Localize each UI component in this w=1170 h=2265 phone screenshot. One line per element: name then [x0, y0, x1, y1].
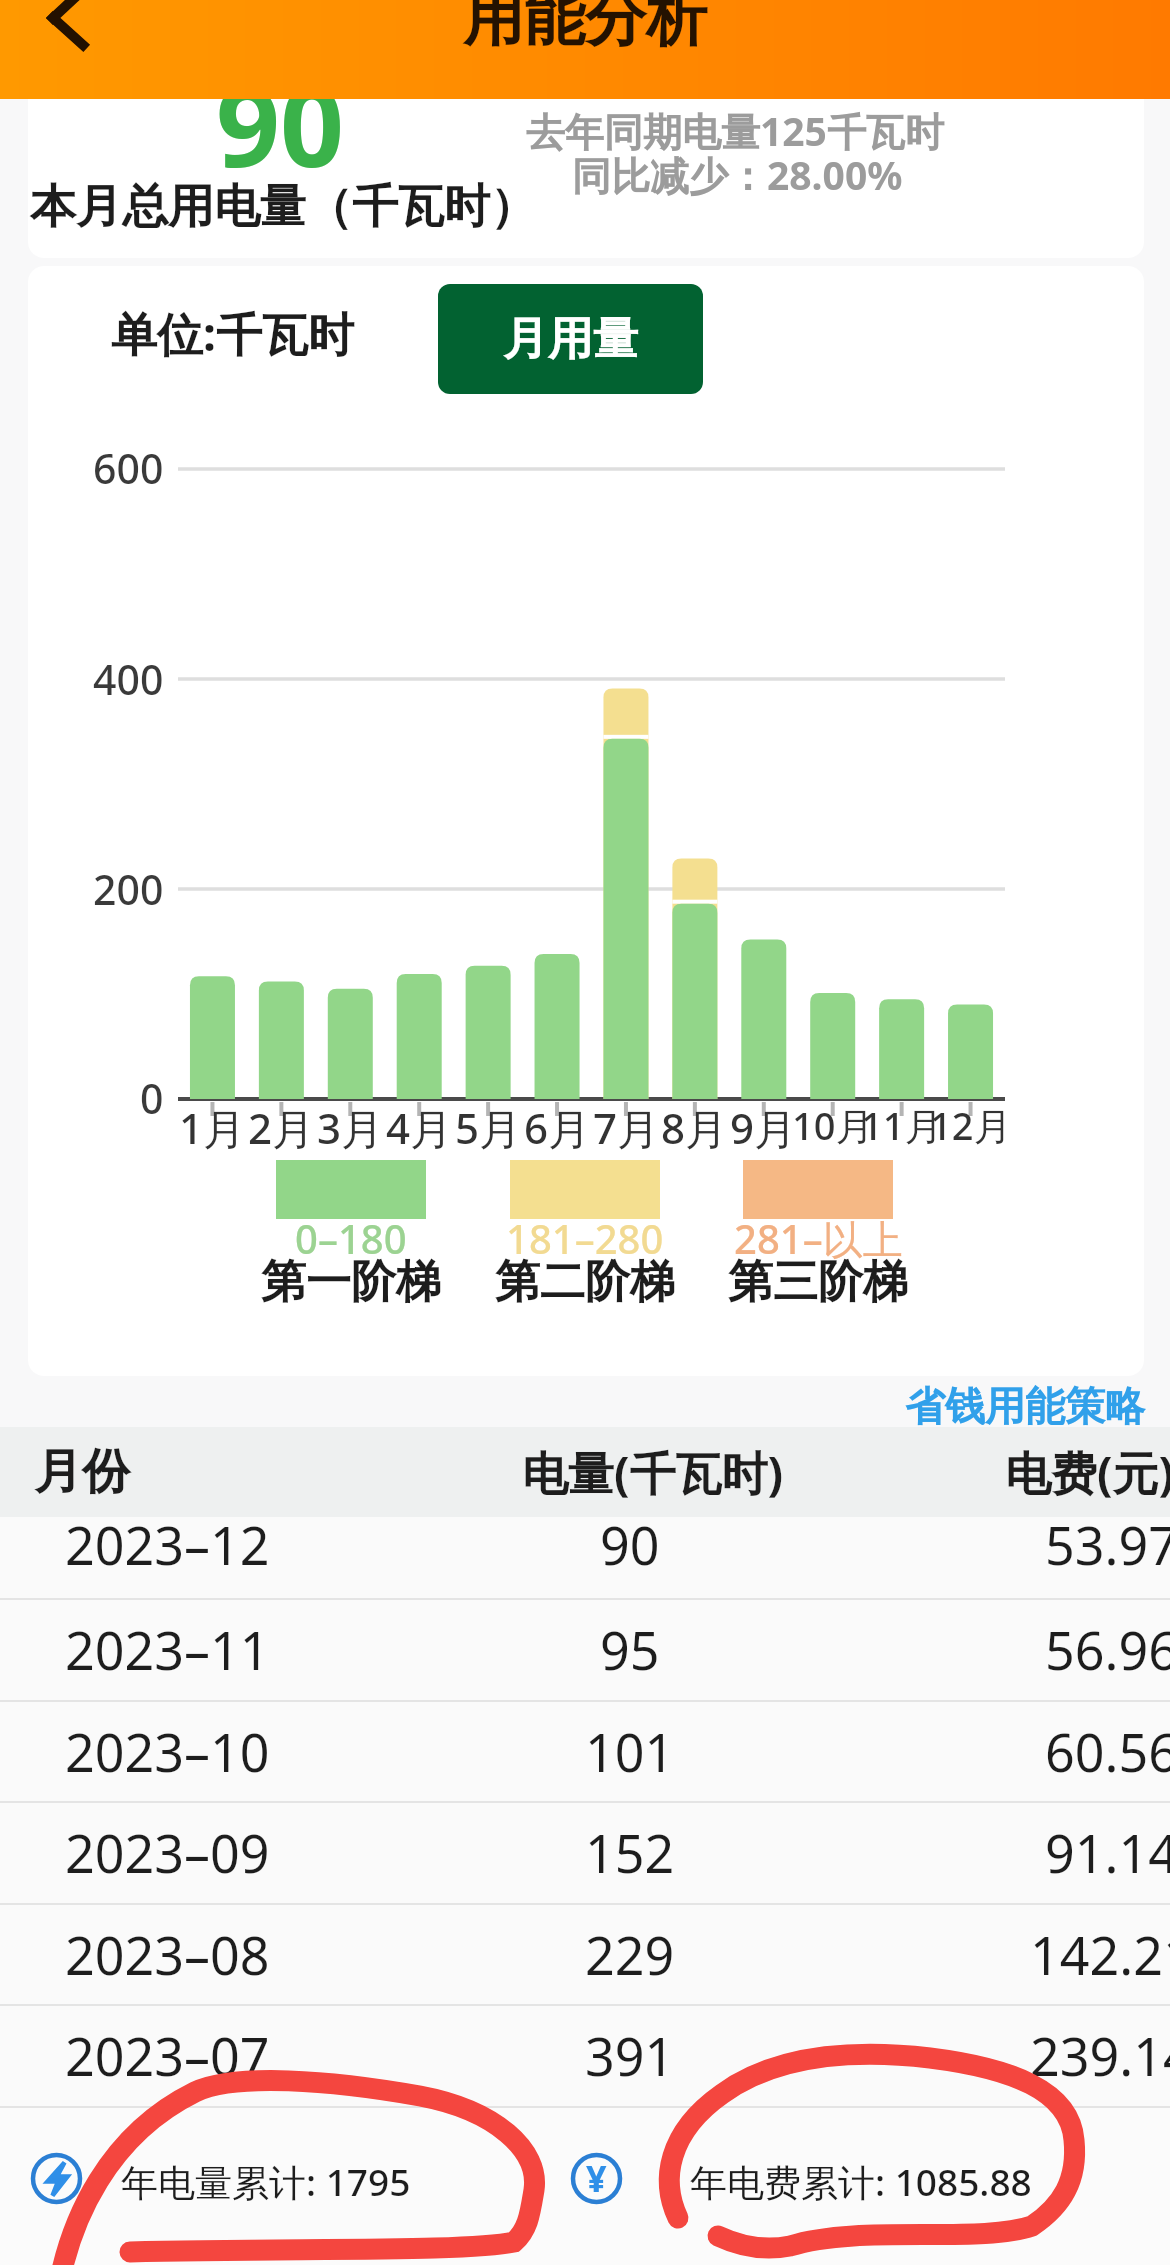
staticText: 9月 [730, 1099, 797, 1156]
staticText: 90 [600, 1509, 660, 1580]
button[interactable]: 省钱用能策略 [893, 1377, 1157, 1435]
button[interactable]: 2023–12 [0, 1504, 1170, 1585]
staticText: 3月 [317, 1099, 384, 1156]
staticText: 同比减少：28.00% [572, 148, 903, 201]
staticText: 4月 [386, 1099, 453, 1156]
staticText: 6月 [524, 1099, 591, 1156]
staticText: 152 [585, 1817, 675, 1888]
staticText: 0–180 [295, 1211, 407, 1265]
staticText: 200 [93, 861, 164, 917]
staticText: 第二阶梯 [495, 1254, 675, 1311]
staticText: 2月 [248, 1099, 315, 1156]
staticText: 2023–10 [65, 1716, 270, 1787]
staticText: 电费(元) [1005, 1441, 1170, 1504]
button[interactable]: 2023–09 [0, 1801, 1170, 1903]
staticText: 91.14 [1045, 1817, 1170, 1888]
button[interactable]: 2023–07 [0, 2004, 1170, 2106]
staticText: 0 [140, 1070, 164, 1126]
staticText: 本月总用电量（千瓦时） [30, 178, 536, 236]
staticText: 181–280 [506, 1211, 664, 1265]
staticText: 53.97 [1045, 1509, 1170, 1580]
staticText: 142.21 [1030, 1919, 1170, 1990]
staticText: 第三阶梯 [728, 1254, 908, 1311]
button[interactable]: 2023–08 [0, 1903, 1170, 2005]
staticText: 101 [585, 1716, 675, 1787]
staticText: 月用量 [503, 311, 638, 368]
button[interactable]: Back [0, 0, 120, 69]
staticText: 5月 [455, 1099, 522, 1156]
staticText: 2023–08 [65, 1919, 270, 1990]
staticText: 239.14 [1030, 2020, 1170, 2091]
staticText: 7月 [593, 1099, 660, 1156]
staticText: ¥ [586, 2154, 607, 2203]
staticText: 2023–12 [65, 1509, 270, 1580]
staticText: 400 [93, 651, 164, 707]
staticText: 12月 [930, 1099, 1012, 1151]
staticText: 229 [585, 1919, 675, 1990]
staticText: 2023–07 [65, 2020, 270, 2091]
staticText: 去年同期电量125千瓦时 [526, 104, 944, 157]
staticText: 年电量累计: 1795 [121, 2156, 411, 2207]
staticText: 10月 [792, 1099, 874, 1151]
button[interactable]: 2023–10 [0, 1700, 1170, 1802]
staticText: 2023–09 [65, 1817, 270, 1888]
staticText: 2023–11 [65, 1614, 270, 1685]
staticText: 56.96 [1045, 1614, 1170, 1685]
staticText: 1月 [179, 1099, 246, 1156]
staticText: 60.56 [1045, 1716, 1170, 1787]
staticText: 95 [600, 1614, 660, 1685]
staticText: 年电费累计: 1085.88 [690, 2156, 1032, 2207]
staticText: 8月 [661, 1099, 728, 1156]
staticText: 电量(千瓦时) [522, 1441, 784, 1504]
staticText: 11月 [861, 1099, 943, 1151]
staticText: 用能分析 [463, 0, 707, 57]
staticText: 281–以上 [734, 1211, 903, 1266]
staticText: 90 [216, 47, 345, 200]
button[interactable]: 2023–11 [0, 1598, 1170, 1700]
staticText: 省钱用能策略 [905, 1381, 1145, 1431]
staticText: 391 [585, 2020, 675, 2091]
staticText: 单位:千瓦时 [111, 302, 354, 365]
button[interactable]: 月用量 [438, 284, 703, 394]
staticText: 600 [93, 440, 164, 496]
staticText: 第一阶梯 [261, 1254, 441, 1311]
staticText: 月份 [34, 1442, 130, 1502]
